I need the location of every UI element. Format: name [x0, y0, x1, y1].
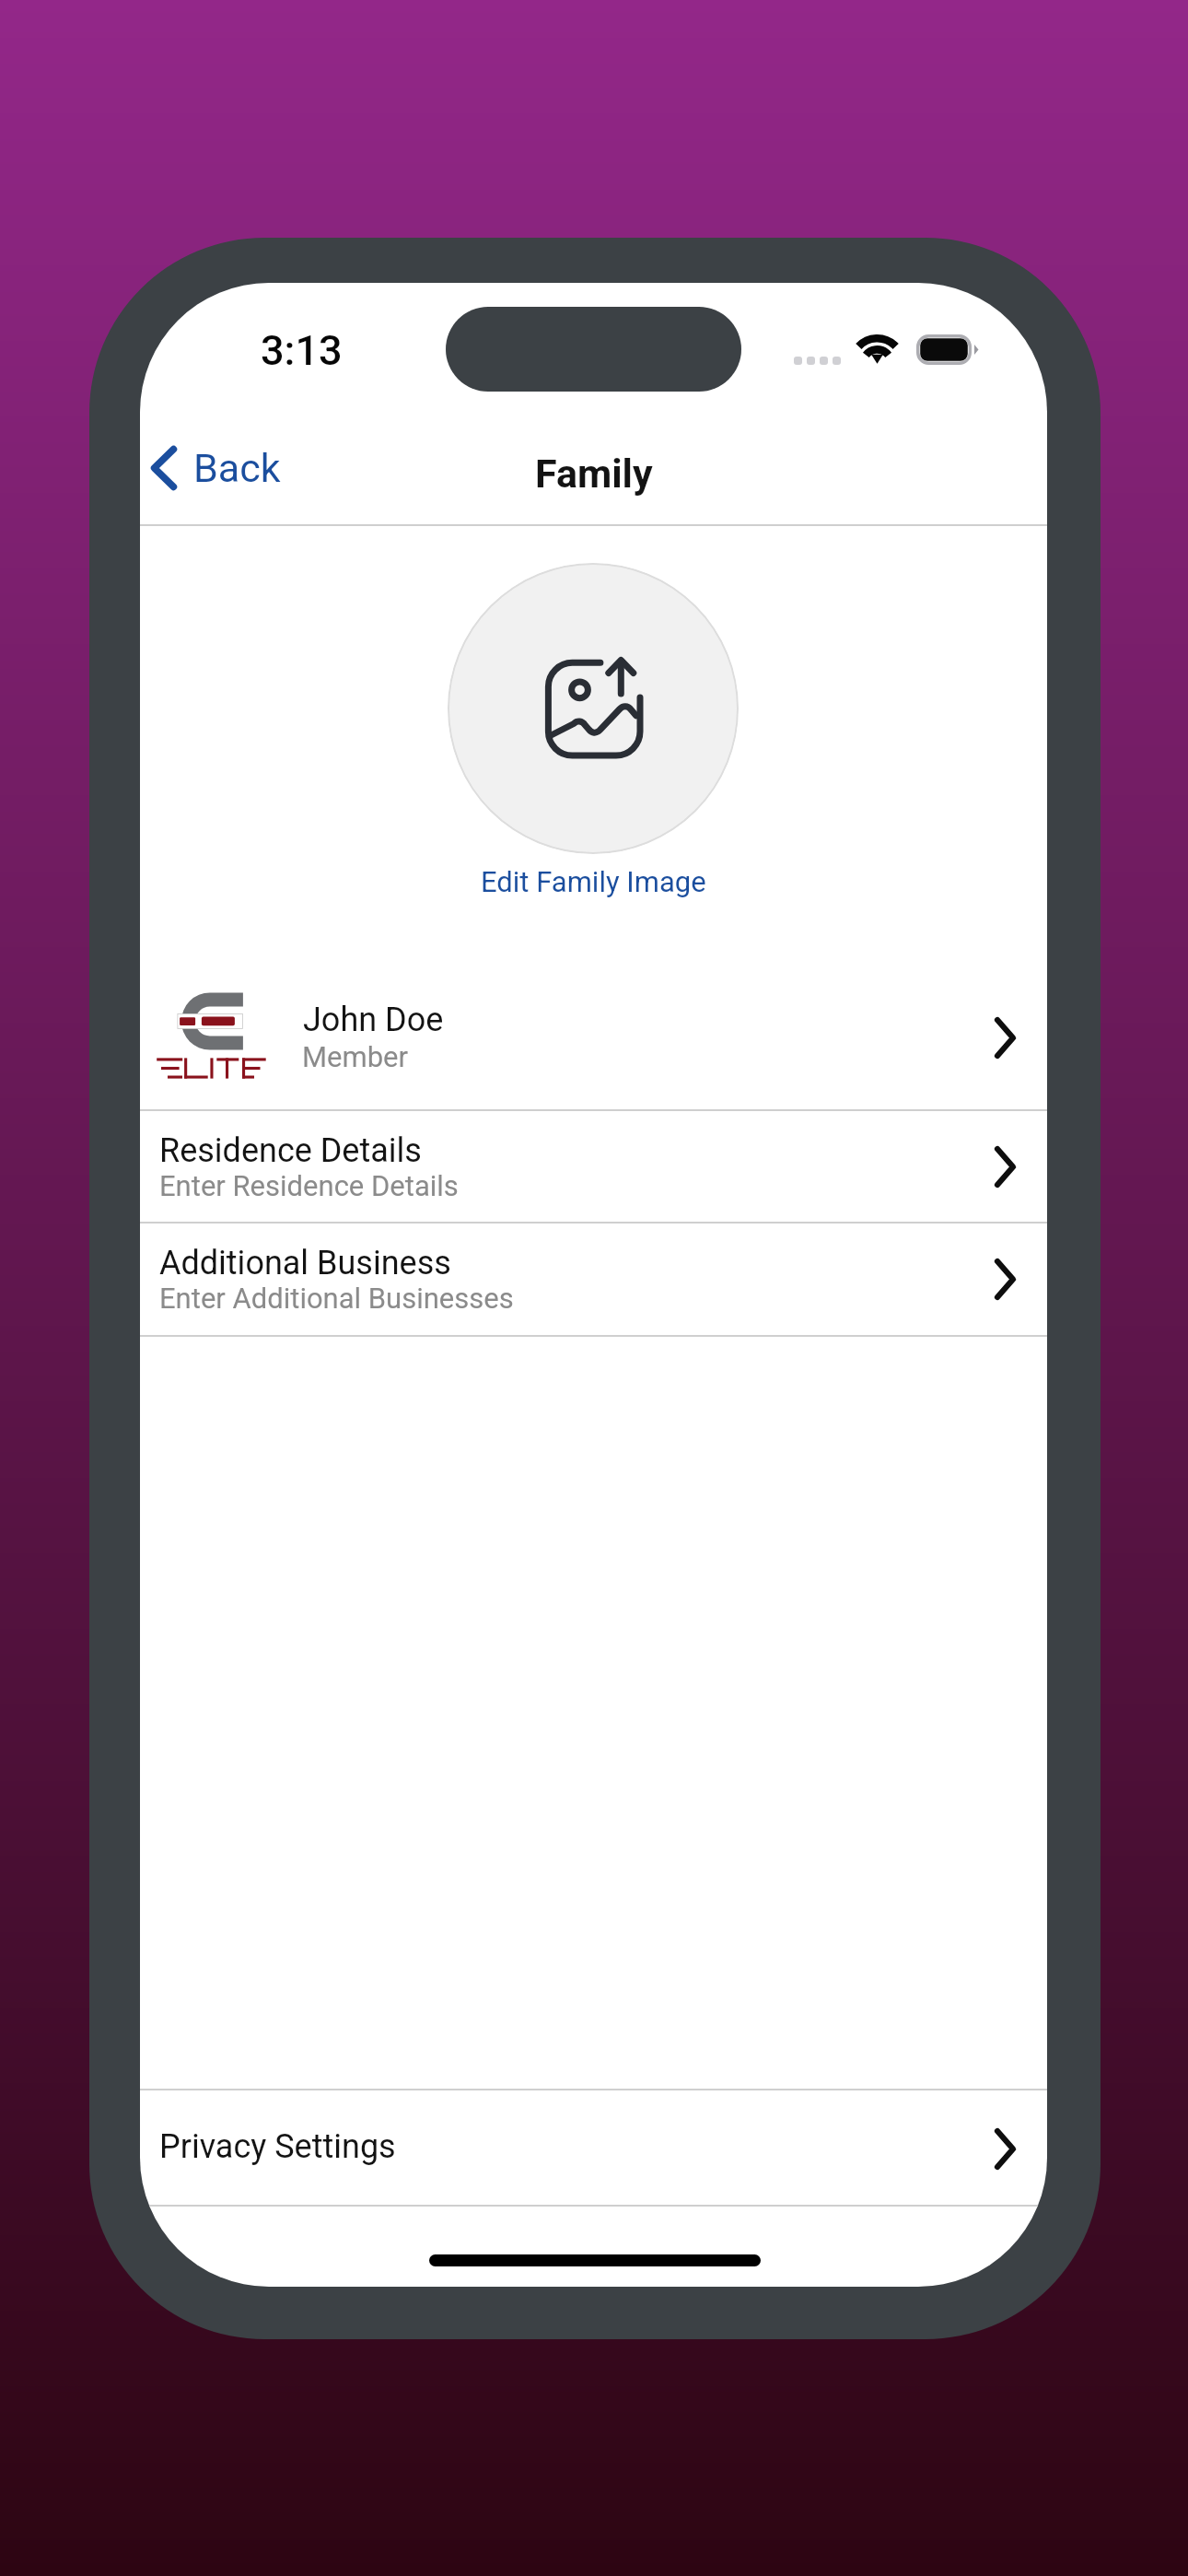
button[interactable]: Edit Family Image: [481, 865, 706, 898]
staticText: Back: [193, 445, 281, 491]
other: Open: [995, 2128, 1016, 2170]
staticText: Member: [302, 1040, 409, 1073]
staticText: Privacy Settings: [159, 2127, 396, 2166]
button[interactable]: Residence Details: [140, 1109, 1047, 1222]
other: Open: [995, 1259, 1016, 1300]
staticText: Enter Residence Details: [159, 1169, 459, 1202]
staticText: Residence Details: [159, 1131, 422, 1170]
staticText: John Doe: [303, 1001, 444, 1039]
button[interactable]: Privacy Settings: [140, 2089, 1047, 2205]
staticText: Additional Business: [159, 1244, 451, 1282]
button[interactable]: Edit Family Image: [448, 563, 739, 854]
button[interactable]: Back: [142, 438, 299, 498]
other: Open: [995, 1017, 1016, 1059]
staticText: Enter Additional Businesses: [159, 1282, 514, 1315]
staticText: 3:13: [261, 326, 343, 375]
button[interactable]: John Doe: [140, 949, 1047, 1109]
staticText: Family: [535, 451, 653, 497]
button[interactable]: Additional Business: [140, 1222, 1047, 1334]
other: Open: [995, 1146, 1016, 1188]
